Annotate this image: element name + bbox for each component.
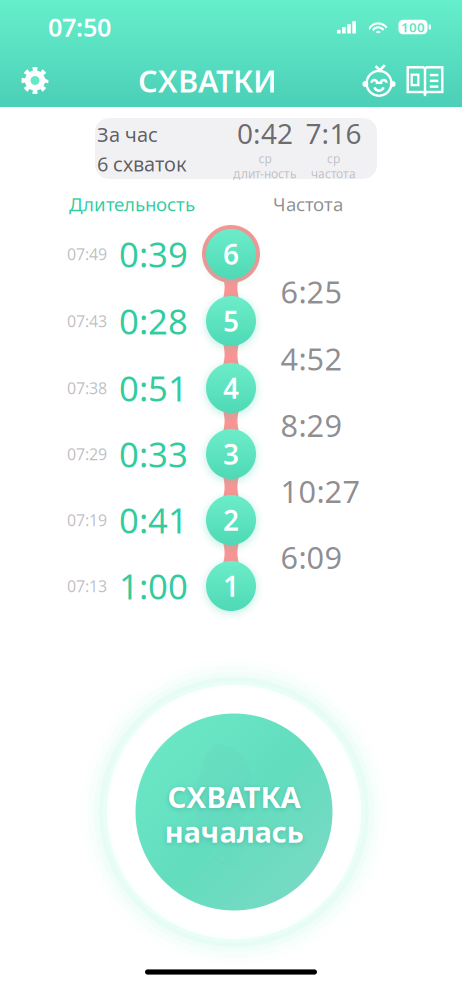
staticText: 07:43 — [67, 310, 107, 332]
staticText: 07:50 — [48, 10, 111, 44]
staticText: 6 схваток — [97, 150, 187, 177]
staticText: 6:09 — [280, 537, 342, 577]
staticText: 0:28 — [119, 298, 188, 344]
staticText: 4 — [223, 369, 239, 407]
staticText: 0:33 — [119, 431, 188, 477]
staticText: 07:13 — [67, 575, 107, 597]
staticText: 4:52 — [280, 338, 342, 379]
staticText: частота — [311, 166, 356, 181]
staticText: ср — [327, 151, 340, 167]
button[interactable]: Baby — [356, 56, 402, 104]
staticText: 10:27 — [280, 471, 360, 511]
staticText: 7:16 — [305, 114, 361, 152]
staticText: 0:39 — [119, 231, 188, 277]
staticText: 1 — [223, 567, 239, 605]
staticText: 07:29 — [67, 443, 107, 465]
staticText: 2 — [223, 501, 239, 539]
staticText: СХВАТКА — [167, 777, 300, 816]
staticText: Частота — [273, 192, 343, 216]
staticText: длит-ность — [233, 166, 297, 181]
staticText: СХВАТКИ — [138, 60, 277, 101]
button[interactable]: СХВАТКА — [79, 657, 389, 967]
button[interactable]: Guide — [402, 56, 448, 104]
staticText: 0:42 — [237, 114, 293, 152]
staticText: Длительность — [69, 192, 195, 216]
staticText: 07:49 — [67, 243, 107, 265]
staticText: 6 — [223, 235, 239, 273]
staticText: 5 — [223, 302, 239, 340]
staticText: началась — [164, 812, 303, 851]
staticText: За час — [97, 121, 158, 147]
staticText: 8:29 — [280, 405, 342, 445]
staticText: 1:00 — [119, 563, 188, 609]
staticText: 6:25 — [280, 271, 342, 312]
staticText: ср — [258, 151, 271, 167]
staticText: 07:19 — [67, 509, 107, 531]
staticText: 07:38 — [67, 377, 107, 399]
staticText: 3 — [223, 435, 239, 473]
staticText: 0:51 — [119, 365, 188, 411]
staticText: 0:41 — [119, 497, 188, 543]
staticText: 100 — [401, 18, 425, 36]
button[interactable]: Settings — [11, 56, 59, 104]
